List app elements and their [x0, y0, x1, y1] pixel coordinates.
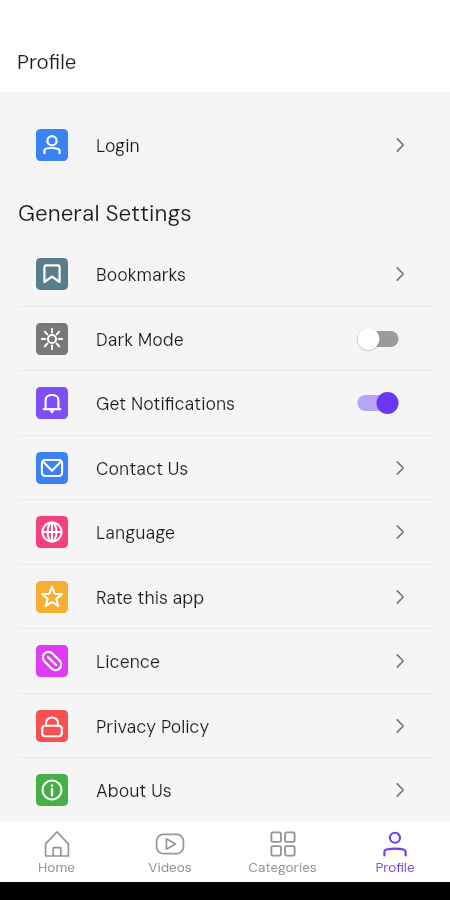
button[interactable]: Switch on — [357, 391, 399, 415]
button[interactable]: Login — [0, 112, 450, 177]
staticText: Profile — [17, 49, 77, 76]
staticText: Profile — [375, 859, 415, 877]
staticText: Login — [96, 135, 140, 158]
button[interactable]: Categories — [226, 821, 339, 882]
staticText: Get Notifications — [96, 393, 236, 416]
button[interactable]: Language — [0, 499, 450, 564]
staticText: Licence — [96, 651, 160, 674]
button[interactable]: Dark Mode — [0, 306, 450, 371]
staticText: Language — [96, 522, 175, 545]
staticText: Categories — [248, 859, 317, 877]
staticText: About Us — [96, 780, 172, 803]
staticText: General Settings — [18, 199, 192, 228]
button[interactable]: Contact Us — [0, 435, 450, 500]
staticText: Videos — [148, 859, 192, 877]
button[interactable]: Profile — [339, 821, 450, 882]
staticText: Privacy Policy — [96, 716, 210, 739]
staticText: Rate this app — [96, 587, 205, 610]
button[interactable]: Licence — [0, 628, 450, 693]
staticText: Dark Mode — [96, 329, 184, 352]
button[interactable]: Privacy Policy — [0, 693, 450, 758]
button[interactable]: Videos — [113, 821, 226, 882]
staticText: Bookmarks — [96, 264, 186, 287]
button[interactable]: Get Notifications — [0, 370, 450, 435]
staticText: Home — [38, 859, 75, 877]
staticText: Contact Us — [96, 458, 189, 481]
button[interactable]: Home — [0, 821, 113, 882]
button[interactable]: Bookmarks — [0, 241, 450, 306]
button[interactable]: About Us — [0, 757, 450, 822]
button[interactable]: Rate this app — [0, 564, 450, 629]
button[interactable]: Switch off — [357, 327, 399, 351]
